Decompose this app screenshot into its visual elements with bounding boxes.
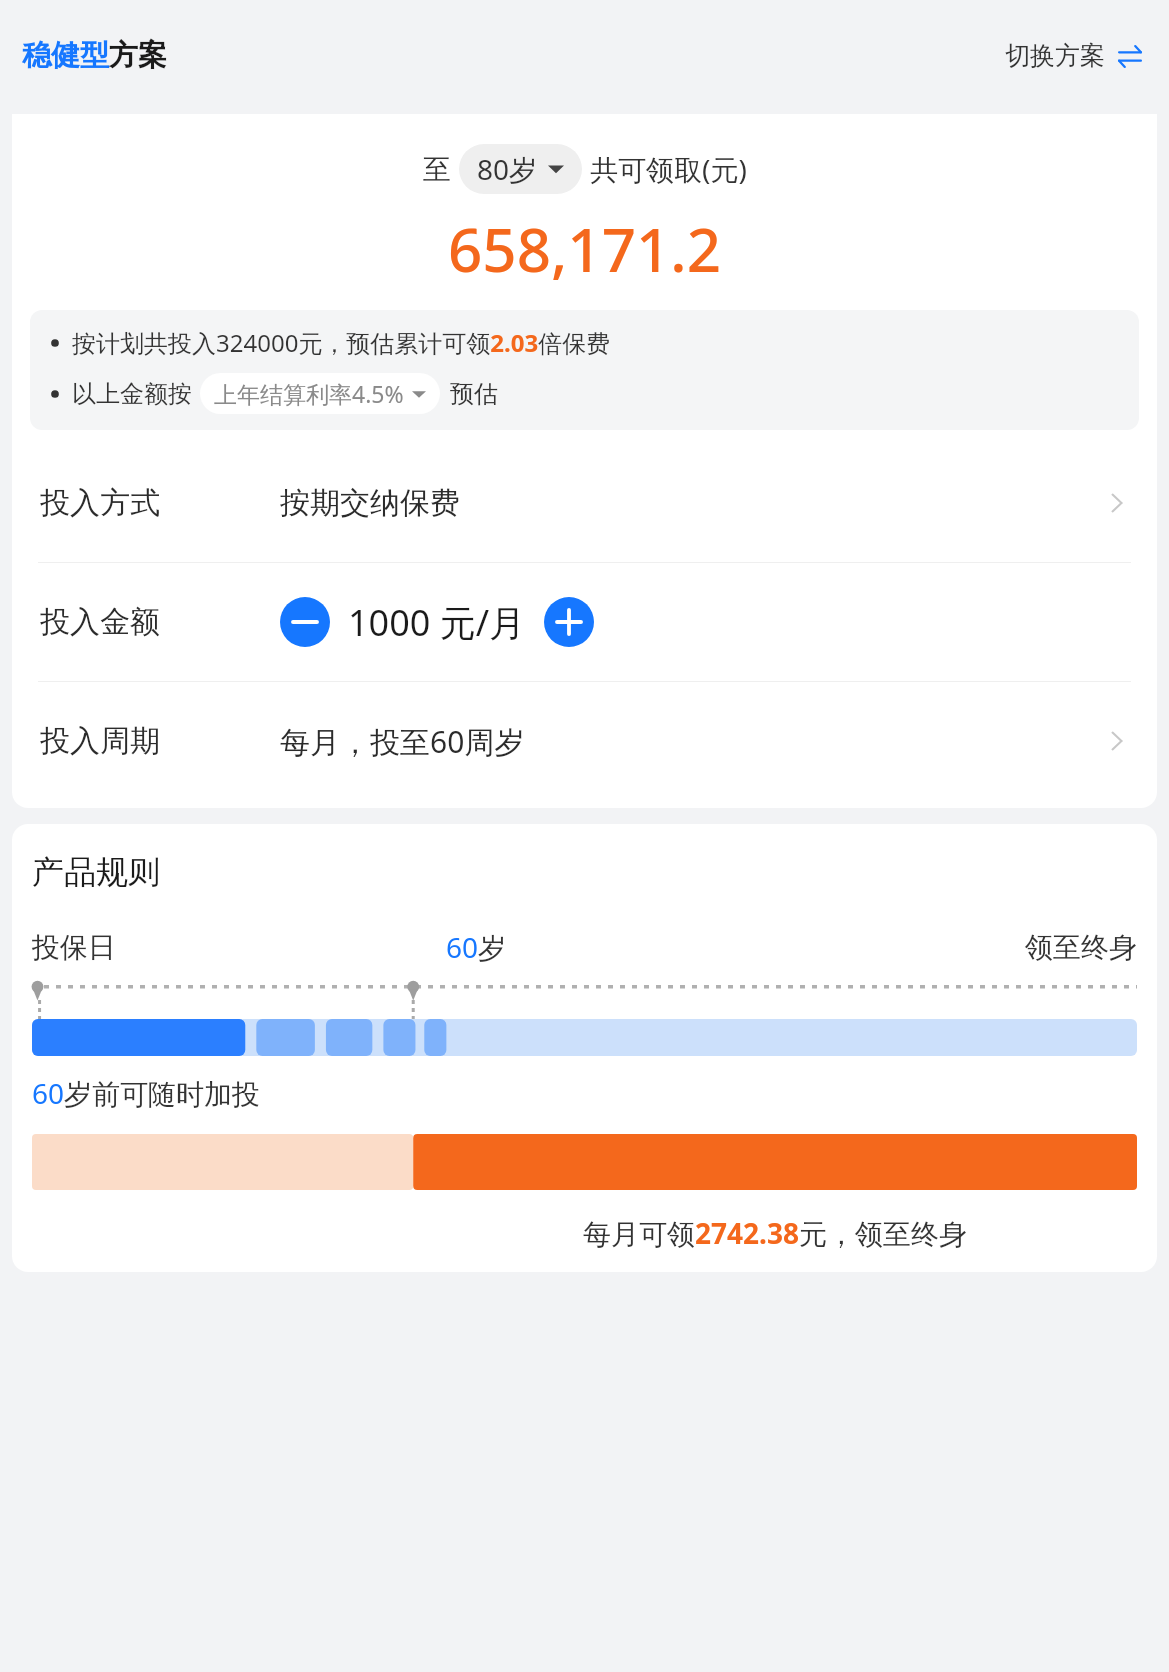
staticText: 按期交纳保费 bbox=[280, 484, 460, 522]
staticText: 切换方案 bbox=[1005, 40, 1105, 71]
staticText: 投入方式 bbox=[40, 484, 280, 522]
staticText: 60岁 bbox=[446, 928, 507, 966]
staticText: 投保日 bbox=[32, 930, 116, 965]
button[interactable]: 上年结算利率4.5% bbox=[200, 373, 440, 414]
staticText: 稳健型方案 bbox=[22, 37, 167, 74]
button[interactable]: Decrease amount bbox=[280, 597, 330, 647]
staticText: 领至终身 bbox=[1025, 930, 1137, 965]
staticText: 上年结算利率4.5% bbox=[214, 378, 404, 409]
staticText: 每月，投至60周岁 bbox=[280, 721, 525, 762]
staticText: 80岁 bbox=[477, 150, 538, 188]
staticText: 60岁前可随时加投 bbox=[32, 1074, 261, 1112]
staticText: 至 bbox=[423, 152, 451, 187]
button[interactable]: Increase amount bbox=[544, 597, 594, 647]
button[interactable]: 投入周期 bbox=[12, 682, 1157, 800]
staticText: 共可领取(元) bbox=[590, 150, 747, 188]
button[interactable]: 80岁 bbox=[459, 144, 582, 194]
staticText: 每月可领2742.38元，领至终身 bbox=[583, 1214, 967, 1252]
staticText: 658,171.2 bbox=[12, 208, 1157, 290]
button[interactable]: 投入方式 bbox=[12, 444, 1157, 562]
staticText: 按计划共投入324000元，预估累计可领2.03倍保费 bbox=[72, 326, 611, 359]
staticText: 以上金额按 bbox=[72, 379, 192, 409]
staticText: 产品规则 bbox=[32, 852, 160, 892]
button[interactable]: 切换方案 bbox=[1001, 36, 1147, 75]
staticText: 1000 元/月 bbox=[348, 598, 526, 647]
staticText: 投入周期 bbox=[40, 722, 280, 760]
staticText: 投入金额 bbox=[40, 603, 280, 641]
staticText: 预估 bbox=[450, 379, 498, 409]
